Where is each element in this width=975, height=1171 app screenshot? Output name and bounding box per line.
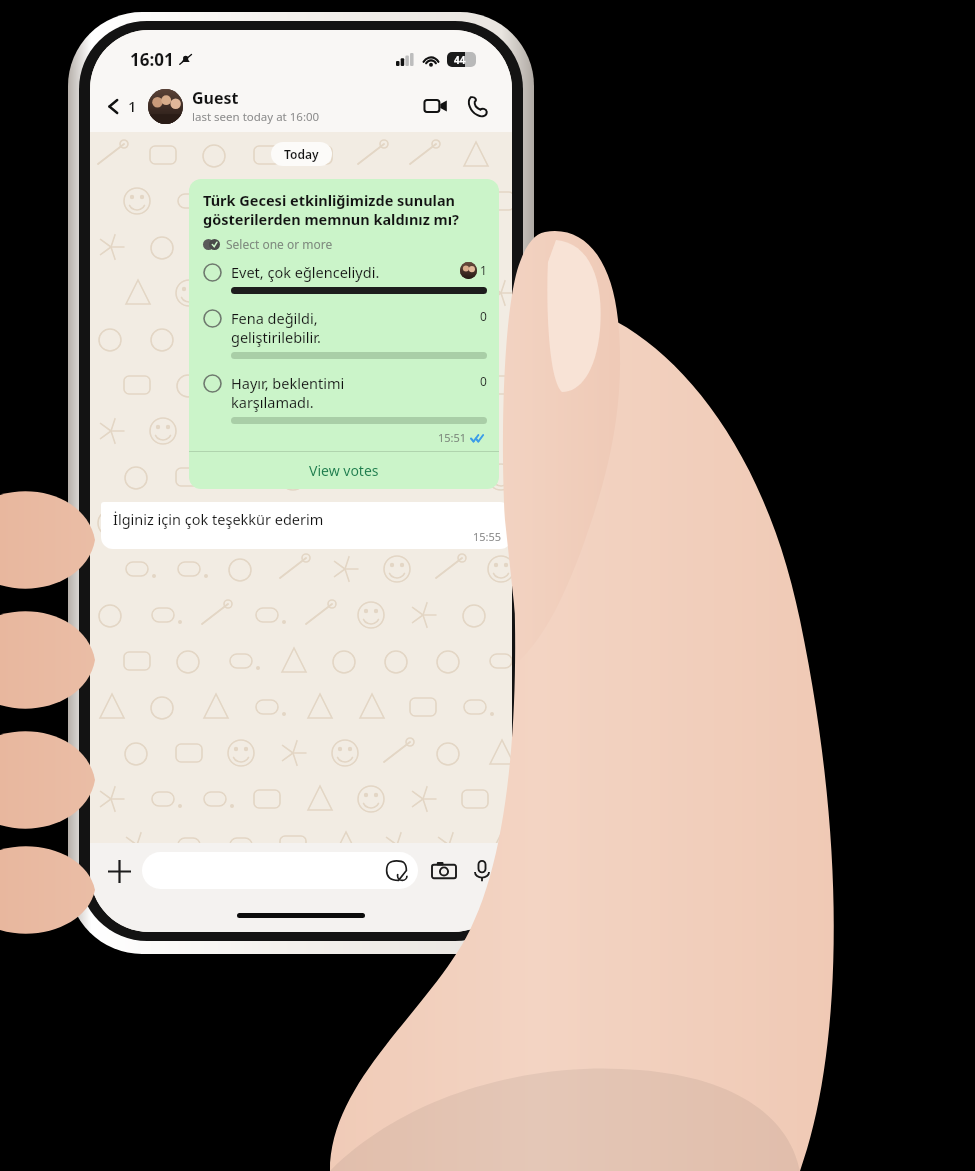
staticText: 44 <box>454 53 466 67</box>
staticText: 15:55 <box>473 529 502 544</box>
button[interactable]: Voice call <box>459 88 496 125</box>
button[interactable]: Hayır, beklentimi karşılamadı. <box>203 373 487 424</box>
staticText: Select one or more <box>226 236 333 252</box>
button[interactable] <box>142 852 418 889</box>
staticText: 0 <box>480 308 487 324</box>
staticText: Fena değildi, geliştirilebilir. <box>231 308 480 347</box>
staticText: View votes <box>309 461 379 480</box>
button[interactable]: Guest <box>192 87 417 125</box>
button[interactable]: Fena değildi, geliştirilebilir. <box>203 308 487 359</box>
staticText: Türk Gecesi etkinliğimizde sunulan göste… <box>203 190 487 229</box>
button[interactable]: View votes <box>189 452 499 489</box>
button[interactable]: İlginiz için çok teşekkür ederim <box>101 502 512 549</box>
staticText: Guest <box>192 87 239 109</box>
button[interactable]: Attach <box>104 856 134 886</box>
staticText: last seen today at 16:00 <box>192 109 320 125</box>
button[interactable]: Back <box>102 90 140 122</box>
button[interactable]: Voice message <box>466 855 498 887</box>
staticText: 0 <box>480 373 487 389</box>
staticText: İlginiz için çok teşekkür ederim <box>113 509 324 529</box>
button[interactable]: Video call <box>417 87 455 125</box>
staticText: Today <box>284 146 319 162</box>
staticText: 16:01 <box>130 48 174 71</box>
staticText: 15:51 <box>438 430 467 445</box>
staticText: Evet, çok eğlenceliydi. <box>231 262 460 282</box>
button[interactable]: Camera <box>428 855 460 887</box>
staticText: 1 <box>480 262 487 278</box>
staticText: Hayır, beklentimi karşılamadı. <box>231 373 480 412</box>
button[interactable]: Evet, çok eğlenceliydi. <box>203 262 487 294</box>
staticText: 1 <box>128 96 137 116</box>
button[interactable]: Today <box>271 142 332 166</box>
